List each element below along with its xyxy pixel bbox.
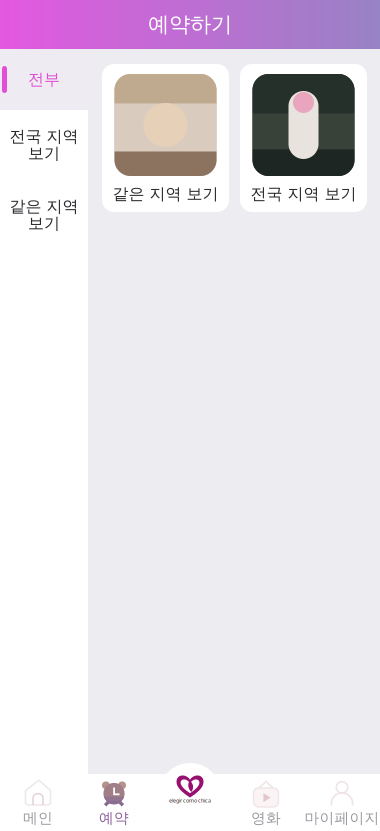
button[interactable]: 예약 (76, 774, 152, 831)
button[interactable]: 홈 (159, 763, 221, 825)
staticText: elegir como chica (169, 797, 211, 804)
button[interactable]: 전부 (0, 49, 88, 110)
staticText: 같은 지역 (9, 197, 78, 216)
staticText: 같은 지역 보기 (112, 184, 218, 204)
button[interactable]: 전국 지역 보기 (240, 64, 367, 212)
button[interactable]: 마이페이지 (304, 774, 380, 831)
staticText: 보기 (28, 144, 60, 163)
button[interactable]: 영화 (228, 774, 304, 831)
staticText: 영화 (251, 809, 281, 827)
staticText: 메인 (23, 809, 53, 827)
staticText: 보기 (28, 214, 60, 233)
button[interactable]: 전국 지역 (0, 110, 88, 180)
button[interactable]: 메인 (0, 774, 76, 831)
button[interactable]: 같은 지역 (0, 180, 88, 250)
staticText: 전국 지역 보기 (250, 184, 356, 204)
staticText: 전부 (28, 70, 60, 89)
staticText: 예약 (99, 809, 129, 827)
staticText: 전국 지역 (9, 127, 78, 146)
button[interactable]: 같은 지역 보기 (102, 64, 229, 212)
staticText: 예약하기 (148, 11, 232, 38)
staticText: 마이페이지 (304, 809, 379, 827)
